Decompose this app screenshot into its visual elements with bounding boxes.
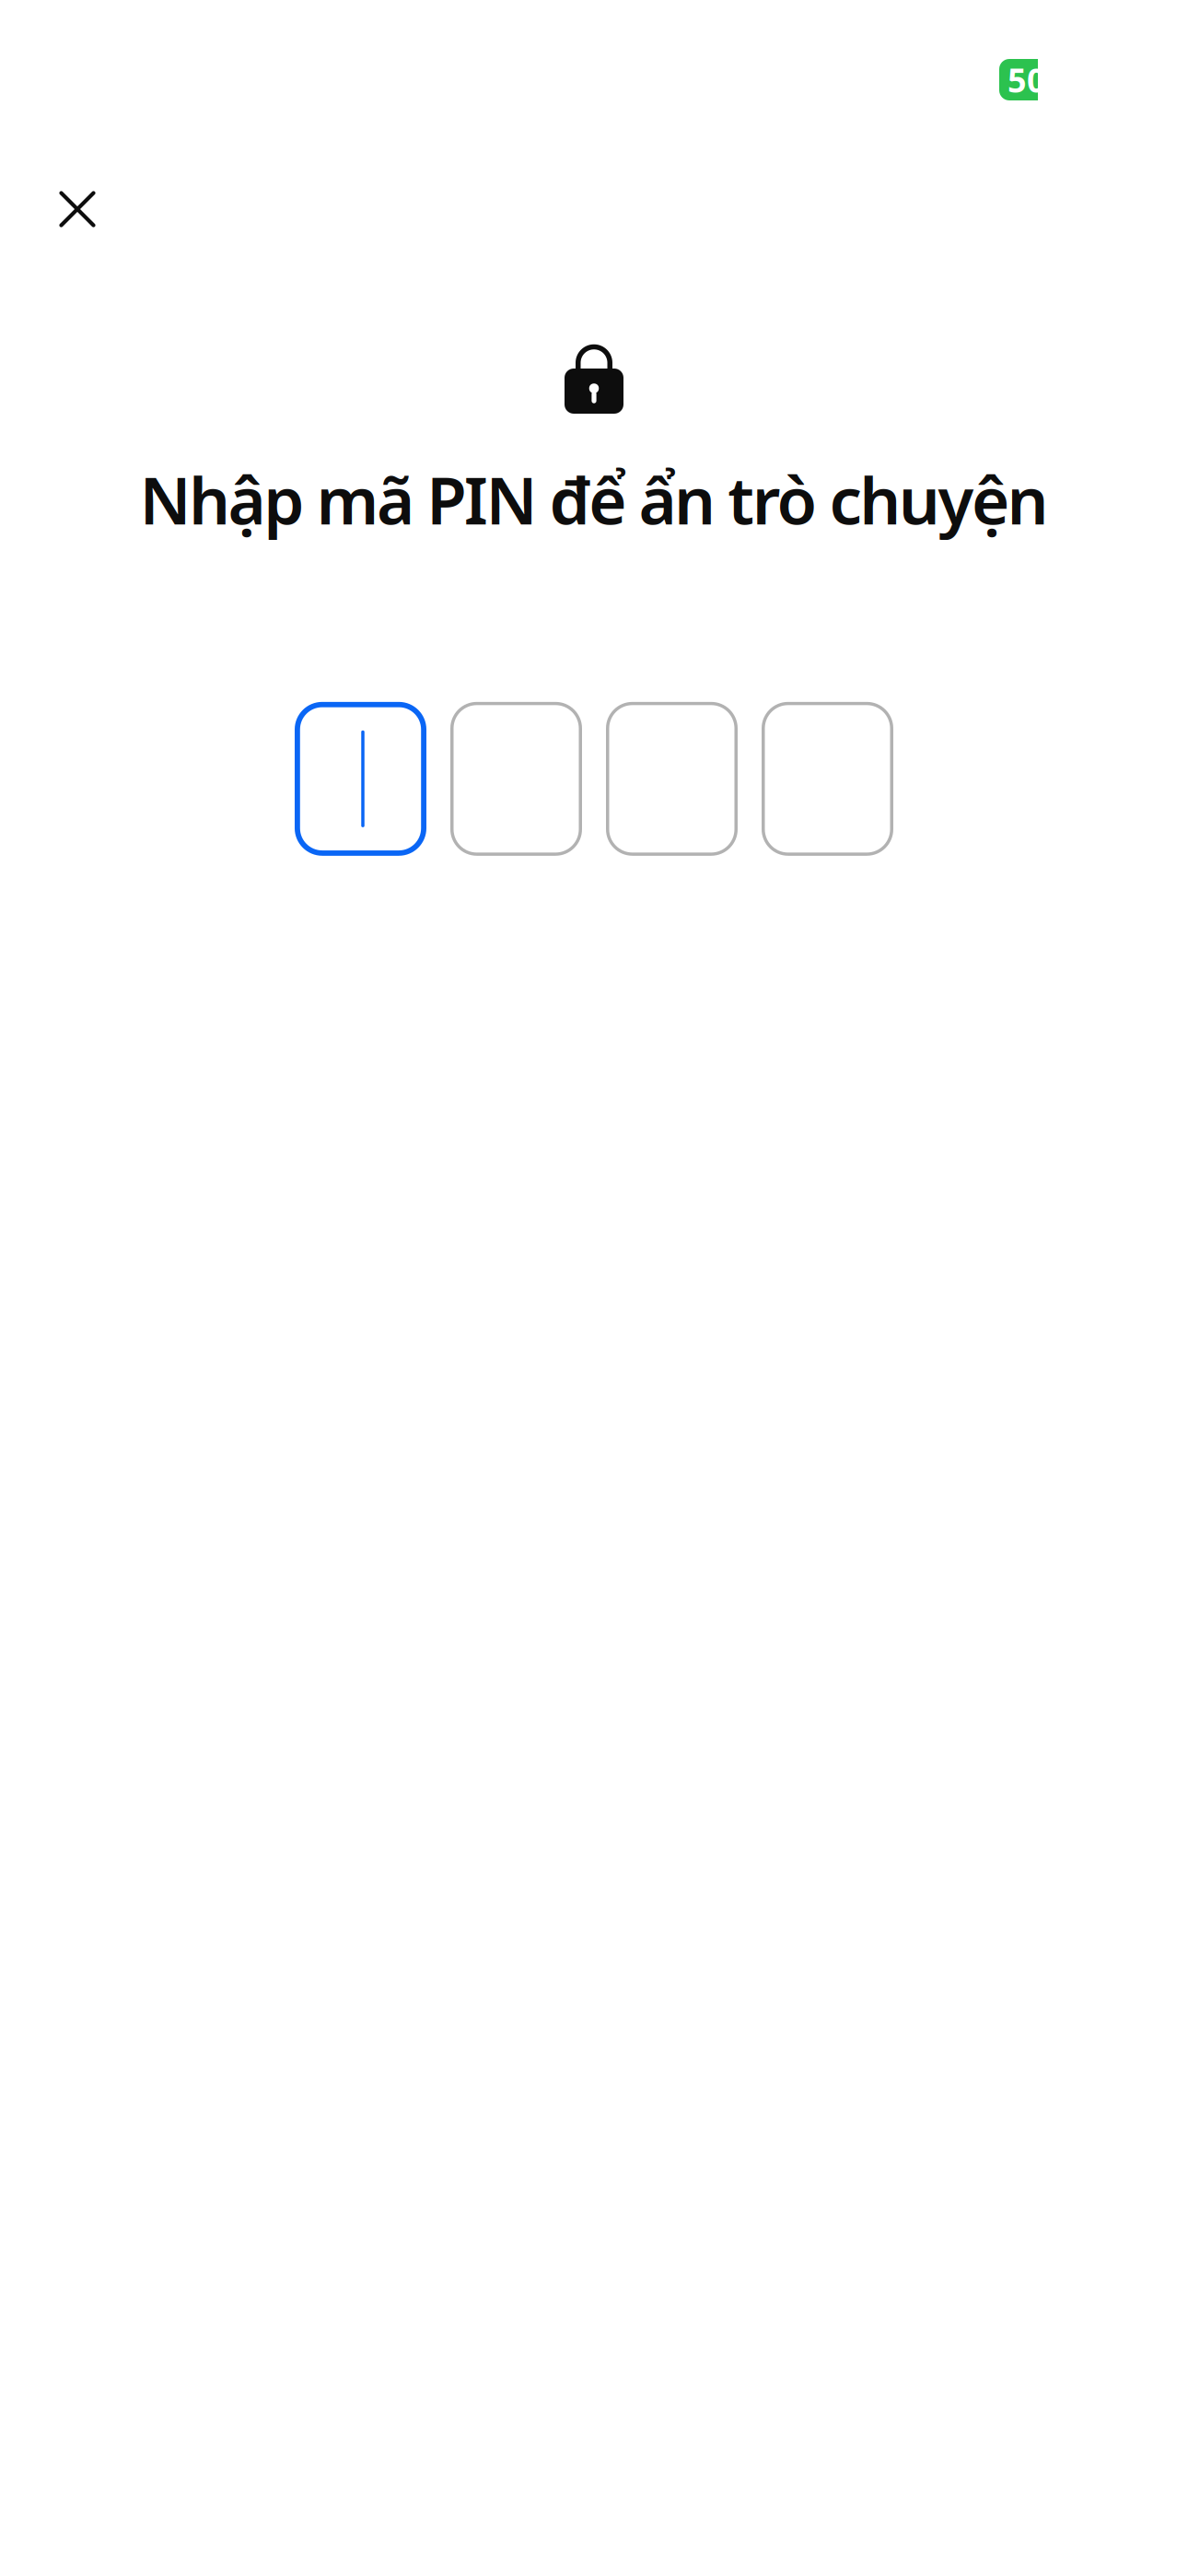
button[interactable]: PIN digit 1: [295, 702, 426, 856]
staticText: 50: [1007, 58, 1046, 102]
button[interactable]: PIN digit 4: [762, 702, 893, 856]
staticText: Nhập mã PIN để ẩn trò chuyện: [139, 456, 1049, 542]
button[interactable]: Close: [39, 170, 116, 248]
button[interactable]: PIN digit 3: [606, 702, 738, 856]
button[interactable]: PIN digit 2: [450, 702, 582, 856]
